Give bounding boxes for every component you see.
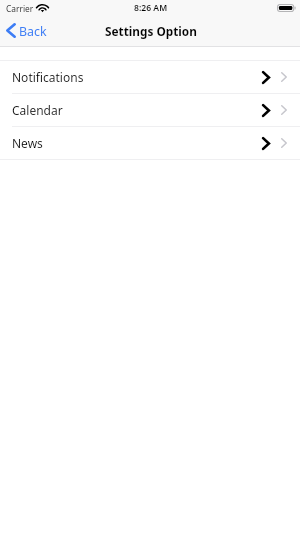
other: Open Notifications: [262, 71, 270, 84]
button[interactable]: Back: [0, 21, 56, 44]
button[interactable]: Notifications: [0, 61, 300, 93]
button[interactable]: News: [0, 127, 300, 159]
other: Open Calendar: [262, 104, 270, 117]
staticText: Back: [19, 23, 47, 40]
other: Open News: [262, 137, 270, 150]
staticText: Notifications: [12, 69, 84, 85]
staticText: Settings Option: [105, 23, 197, 39]
staticText: Calendar: [12, 102, 63, 118]
button[interactable]: Calendar: [0, 94, 300, 126]
staticText: Carrier: [6, 3, 34, 14]
staticText: News: [12, 135, 43, 151]
other: Back: [6, 23, 16, 38]
staticText: 8:26 AM: [134, 2, 168, 14]
